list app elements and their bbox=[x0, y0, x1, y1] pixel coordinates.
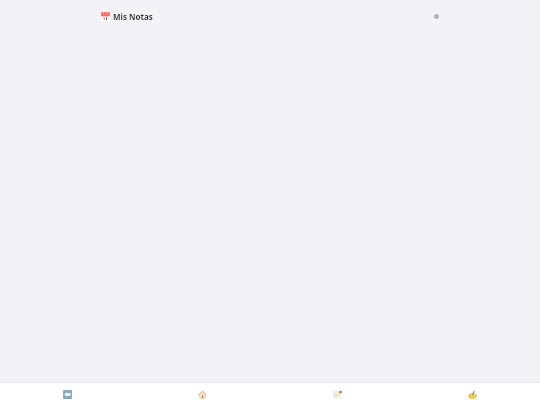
button[interactable]: More options bbox=[434, 14, 439, 19]
button[interactable]: Mis Notas bbox=[101, 11, 153, 22]
button[interactable]: Home bbox=[135, 383, 270, 405]
staticText: Mis Notas bbox=[113, 11, 153, 22]
button[interactable]: Pinned bbox=[405, 383, 540, 405]
button[interactable]: Notes bbox=[270, 383, 405, 405]
button[interactable]: Back bbox=[0, 383, 135, 405]
